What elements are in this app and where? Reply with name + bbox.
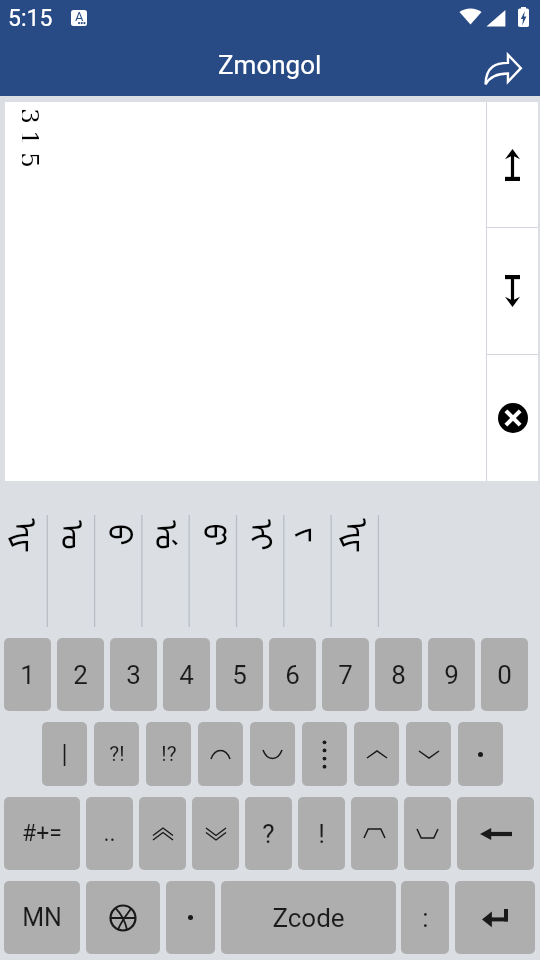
- button[interactable]: Backspace: [457, 797, 534, 870]
- button[interactable]: ?!: [94, 722, 139, 786]
- button[interactable]: Switch language: [86, 881, 160, 954]
- staticText: 3: [126, 660, 141, 690]
- staticText: 9: [444, 660, 459, 690]
- button[interactable]: [94, 486, 141, 634]
- staticText: ᠣ: [52, 520, 108, 550]
- staticText: !?: [161, 742, 177, 767]
- button[interactable]: ?: [245, 797, 292, 870]
- staticText: 6: [285, 660, 300, 690]
- staticText: ᠢ: [241, 519, 297, 551]
- staticText: 2: [73, 660, 88, 690]
- button[interactable]: [198, 722, 243, 786]
- staticText: Zmongol: [218, 50, 322, 80]
- button[interactable]: 5: [216, 638, 263, 711]
- button[interactable]: :: [401, 881, 449, 954]
- staticText: ?!: [109, 742, 125, 767]
- button[interactable]: 9: [428, 638, 475, 711]
- staticText: ᠪ: [99, 524, 155, 546]
- button[interactable]: [354, 722, 399, 786]
- button[interactable]: 2: [57, 638, 104, 711]
- staticText: ᡙ: [5, 517, 61, 553]
- button[interactable]: Scroll to top: [487, 102, 538, 227]
- staticText: 5: [232, 660, 247, 690]
- staticText: |: [61, 740, 68, 769]
- staticText: ᡦ: [193, 523, 249, 546]
- button[interactable]: [188, 486, 235, 634]
- button[interactable]: Zcode: [221, 881, 396, 954]
- button[interactable]: [250, 722, 295, 786]
- button[interactable]: [458, 722, 503, 786]
- button[interactable]: 7: [322, 638, 369, 711]
- button[interactable]: [329, 486, 376, 634]
- button[interactable]: [404, 797, 451, 870]
- button[interactable]: [139, 797, 186, 870]
- button[interactable]: Share: [475, 41, 531, 97]
- staticText: A: [75, 10, 84, 24]
- button[interactable]: [302, 722, 347, 786]
- button[interactable]: [0, 486, 47, 634]
- staticText: 0: [497, 660, 512, 690]
- staticText: 7: [338, 660, 353, 690]
- staticText: 3: [22, 108, 44, 124]
- button[interactable]: Scroll to bottom: [487, 228, 538, 354]
- staticText: MN: [22, 903, 62, 932]
- staticText: 5:15: [8, 5, 53, 32]
- button[interactable]: 8: [375, 638, 422, 711]
- button[interactable]: !?: [146, 722, 191, 786]
- button[interactable]: !: [298, 797, 345, 870]
- staticText: 5: [22, 152, 44, 168]
- button[interactable]: |: [42, 722, 87, 786]
- button[interactable]: Clear text: [487, 355, 538, 481]
- staticText: ᡙ: [336, 517, 392, 553]
- button[interactable]: [141, 486, 188, 634]
- button[interactable]: 6: [269, 638, 316, 711]
- staticText: ᡠ: [146, 520, 202, 550]
- button[interactable]: [406, 722, 451, 786]
- button[interactable]: 4: [163, 638, 210, 711]
- staticText: #+=: [22, 820, 62, 847]
- staticText: 1: [22, 130, 44, 146]
- button[interactable]: #+=: [4, 797, 80, 870]
- button[interactable]: ..: [86, 797, 133, 870]
- staticText: ?: [262, 819, 275, 849]
- staticText: 4: [179, 660, 194, 690]
- staticText: ..: [103, 820, 116, 847]
- staticText: :: [422, 903, 429, 933]
- staticText: !: [318, 819, 325, 849]
- button[interactable]: [166, 881, 215, 954]
- button[interactable]: 0: [481, 638, 528, 711]
- button[interactable]: Enter: [455, 881, 535, 954]
- staticText: 8: [391, 660, 406, 690]
- staticText: Zcode: [272, 903, 345, 933]
- button[interactable]: [235, 486, 282, 634]
- staticText: ᠵ: [288, 527, 344, 543]
- button[interactable]: 1: [4, 638, 51, 711]
- button[interactable]: [192, 797, 239, 870]
- button[interactable]: 3: [110, 638, 157, 711]
- button[interactable]: MN: [4, 881, 80, 954]
- button[interactable]: [351, 797, 398, 870]
- button[interactable]: [47, 486, 94, 634]
- staticText: 1: [20, 660, 35, 690]
- button[interactable]: [282, 486, 329, 634]
